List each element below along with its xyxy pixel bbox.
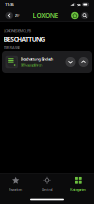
button[interactable]: Home: [71, 12, 78, 19]
staticText: BESCHATTUNG: [3, 35, 45, 44]
staticText: TERRASSE: [3, 45, 20, 50]
button[interactable]: Back: [5, 10, 20, 21]
staticText: 88% ausgefahren: [21, 62, 42, 68]
button[interactable]: Lower shade: [65, 57, 75, 67]
button[interactable]: Zentral: [31, 173, 63, 195]
button[interactable]: Search: [81, 12, 88, 19]
button[interactable]: Favoriten: [0, 173, 31, 195]
staticText: Zentral: [41, 187, 52, 192]
button[interactable]: Kategorien: [63, 173, 94, 195]
staticText: Beschattung Eindach: [21, 56, 54, 62]
staticText: LOXONEDEMO_FB: [3, 28, 31, 33]
button[interactable]: Raise shade: [78, 57, 88, 67]
staticText: Kategorien: [70, 187, 87, 192]
button[interactable]: Beschattung Eindach: [2, 51, 92, 73]
staticText: Favoriten: [9, 187, 23, 192]
staticText: LOXONE: [33, 11, 59, 20]
staticText: 11:36: [5, 2, 14, 7]
staticText: 25°: [14, 13, 20, 18]
